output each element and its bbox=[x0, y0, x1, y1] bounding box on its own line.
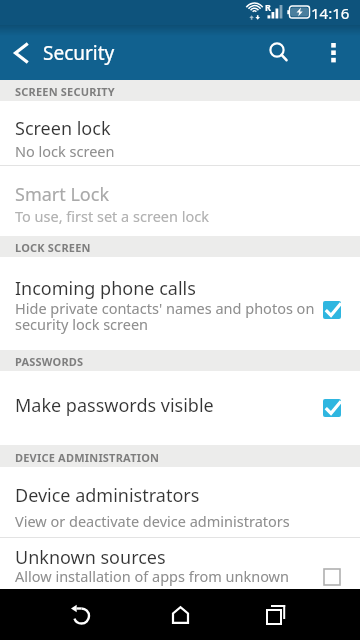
button[interactable]: Incoming phone calls bbox=[0, 257, 360, 350]
staticText: 14:16 bbox=[311, 3, 350, 23]
staticText: PASSWORDS bbox=[15, 354, 84, 369]
button[interactable]: Make passwords visible bbox=[0, 371, 360, 445]
staticText: Device administrators bbox=[15, 483, 200, 508]
staticText: SCREEN SECURITY bbox=[15, 84, 115, 99]
staticText: Make passwords visible bbox=[15, 393, 214, 418]
button[interactable] bbox=[252, 25, 306, 80]
button[interactable] bbox=[156, 589, 204, 640]
button[interactable] bbox=[323, 568, 341, 586]
staticText: LOCK SCREEN bbox=[15, 240, 91, 255]
staticText: DEVICE ADMINISTRATION bbox=[15, 450, 160, 465]
staticText: R bbox=[265, 1, 271, 13]
staticText: Unknown sources bbox=[15, 545, 166, 570]
staticText: Screen lock bbox=[15, 116, 111, 141]
staticText: To use, first set a screen lock bbox=[15, 206, 209, 226]
button[interactable] bbox=[57, 589, 105, 640]
button[interactable] bbox=[323, 301, 341, 319]
button[interactable]: Device administrators bbox=[0, 467, 360, 537]
button[interactable]: Screen lock bbox=[0, 101, 360, 165]
staticText: Hide private contacts' names and photos … bbox=[15, 298, 322, 334]
button[interactable]: Smart Lock bbox=[0, 166, 360, 236]
staticText: Smart Lock bbox=[15, 182, 109, 207]
staticText: Incoming phone calls bbox=[15, 276, 196, 301]
staticText: Allow installation of apps from unknown bbox=[15, 566, 289, 586]
staticText: View or deactivate device administrators bbox=[15, 511, 290, 531]
button[interactable] bbox=[323, 399, 341, 417]
button[interactable] bbox=[252, 589, 300, 640]
staticText: No lock screen bbox=[15, 141, 115, 161]
staticText: Security bbox=[43, 40, 115, 66]
button[interactable] bbox=[0, 25, 42, 80]
button[interactable]: Unknown sources bbox=[0, 538, 360, 589]
button[interactable] bbox=[306, 25, 360, 80]
